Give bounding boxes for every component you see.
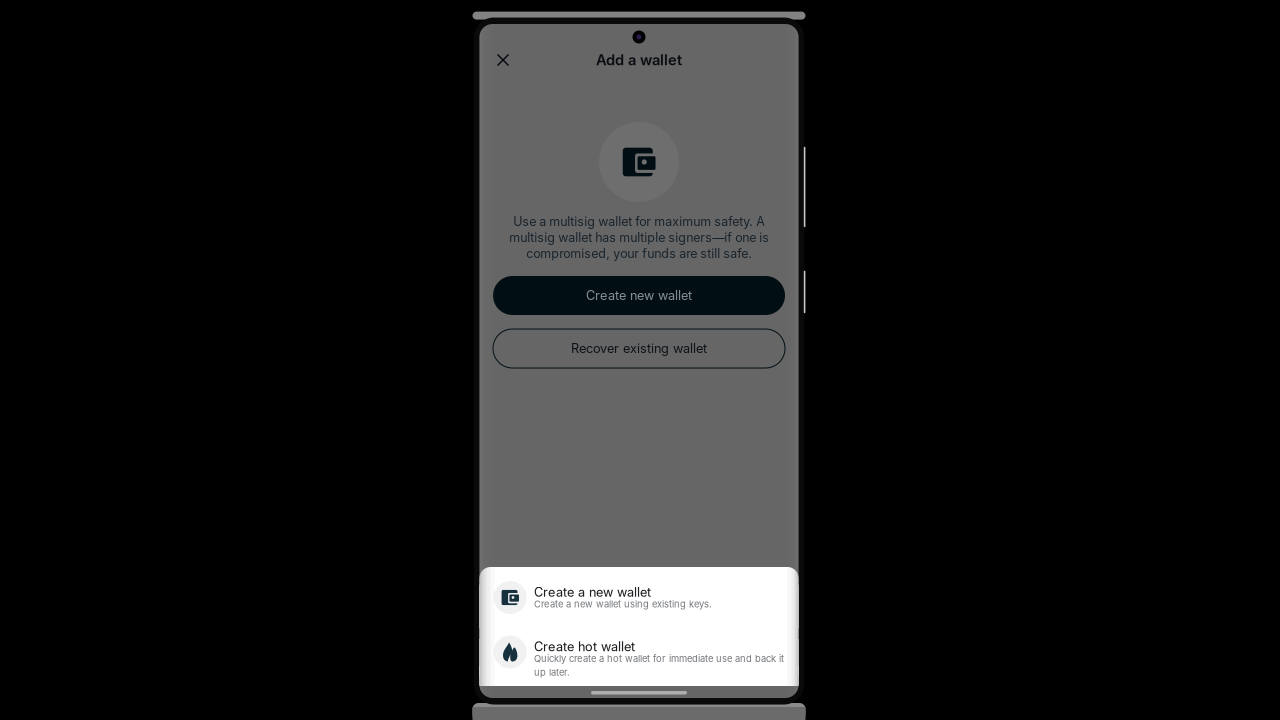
staticText: Create a new wallet using existing keys. <box>534 598 712 610</box>
staticText: Quickly create a hot wallet for immediat… <box>534 653 784 678</box>
button[interactable]: Close <box>488 45 518 75</box>
button[interactable]: Create new wallet <box>493 276 785 315</box>
staticText: Recover existing wallet <box>571 341 707 356</box>
button[interactable]: Create hot wallet <box>479 639 798 685</box>
button[interactable]: Recover existing wallet <box>493 329 785 368</box>
staticText: Create hot wallet <box>534 639 635 654</box>
button[interactable]: Create a new wallet <box>479 584 798 628</box>
staticText: Use a multisig wallet for maximum safety… <box>509 214 769 261</box>
staticText: Create new wallet <box>586 288 692 303</box>
staticText: Add a wallet <box>596 51 682 69</box>
staticText: Create a new wallet <box>534 584 651 600</box>
